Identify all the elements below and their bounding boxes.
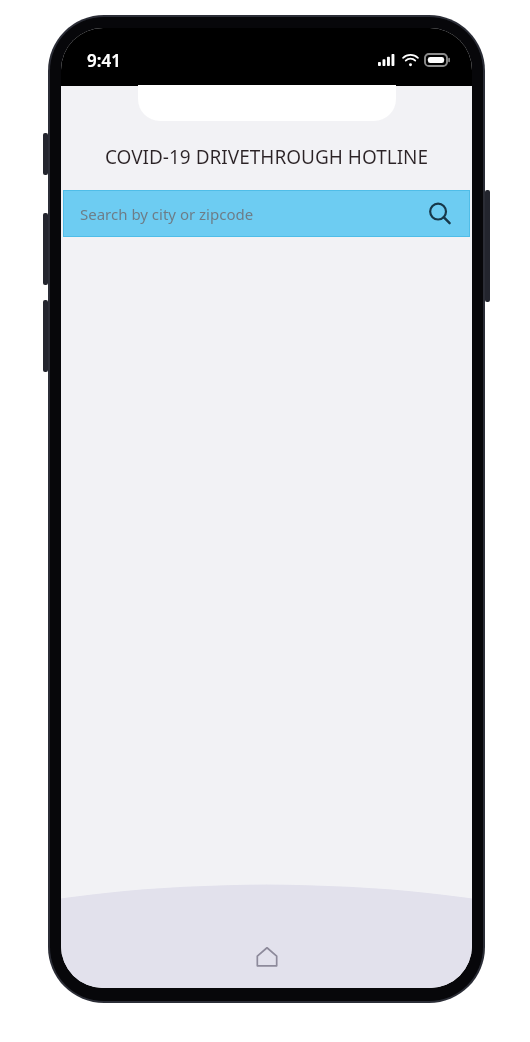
button[interactable]: Search by city or zipcode bbox=[64, 191, 469, 236]
button[interactable]: Search bbox=[425, 199, 455, 229]
staticText: COVID-19 DRIVETHROUGH HOTLINE bbox=[91, 144, 442, 170]
staticText: 9:41 bbox=[87, 49, 121, 72]
staticText: Search by city or zipcode bbox=[80, 204, 254, 224]
button[interactable]: Home bbox=[61, 926, 472, 988]
